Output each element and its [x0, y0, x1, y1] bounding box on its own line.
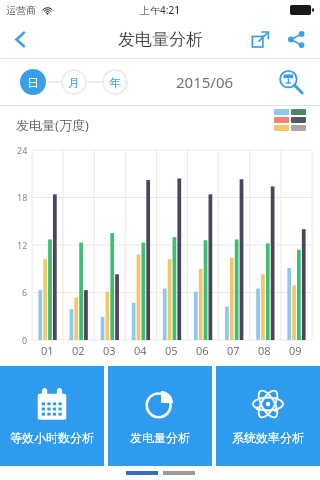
- staticText: 发电量分析: [130, 430, 190, 445]
- button[interactable]: 年: [102, 69, 128, 95]
- staticText: 18: [17, 191, 28, 203]
- button[interactable]: Share: [278, 21, 314, 57]
- staticText: 上午4:21: [140, 3, 180, 17]
- button[interactable]: Export: [242, 21, 278, 57]
- staticText: 系统效率分析: [232, 430, 304, 445]
- staticText: 02: [72, 343, 85, 358]
- staticText: 运营商: [6, 4, 36, 17]
- staticText: 发电量分析: [118, 29, 203, 50]
- staticText: 08: [258, 343, 271, 358]
- staticText: 06: [196, 343, 209, 358]
- button[interactable]: Back: [0, 20, 40, 58]
- button[interactable]: 发电量分析: [108, 366, 212, 466]
- staticText: 年: [109, 75, 121, 90]
- staticText: 07: [227, 343, 240, 358]
- staticText: 09: [289, 343, 302, 358]
- button[interactable]: Search: [274, 65, 308, 99]
- staticText: 月: [68, 75, 80, 90]
- staticText: 发电量(万度): [16, 116, 89, 134]
- staticText: 12: [17, 239, 28, 251]
- staticText: 6: [22, 286, 28, 298]
- button[interactable]: 系统效率分析: [216, 366, 320, 466]
- button[interactable]: 等效小时数分析: [0, 366, 104, 466]
- staticText: 0: [22, 334, 28, 346]
- staticText: 等效小时数分析: [10, 430, 94, 445]
- button[interactable]: 日: [20, 69, 46, 95]
- staticText: 2015/06: [176, 72, 234, 92]
- staticText: 04: [134, 343, 147, 358]
- staticText: 03: [103, 343, 116, 358]
- staticText: 01: [41, 343, 54, 358]
- staticText: 日: [27, 75, 39, 90]
- staticText: 05: [165, 343, 178, 358]
- button[interactable]: 月: [61, 69, 87, 95]
- staticText: 24: [17, 144, 28, 156]
